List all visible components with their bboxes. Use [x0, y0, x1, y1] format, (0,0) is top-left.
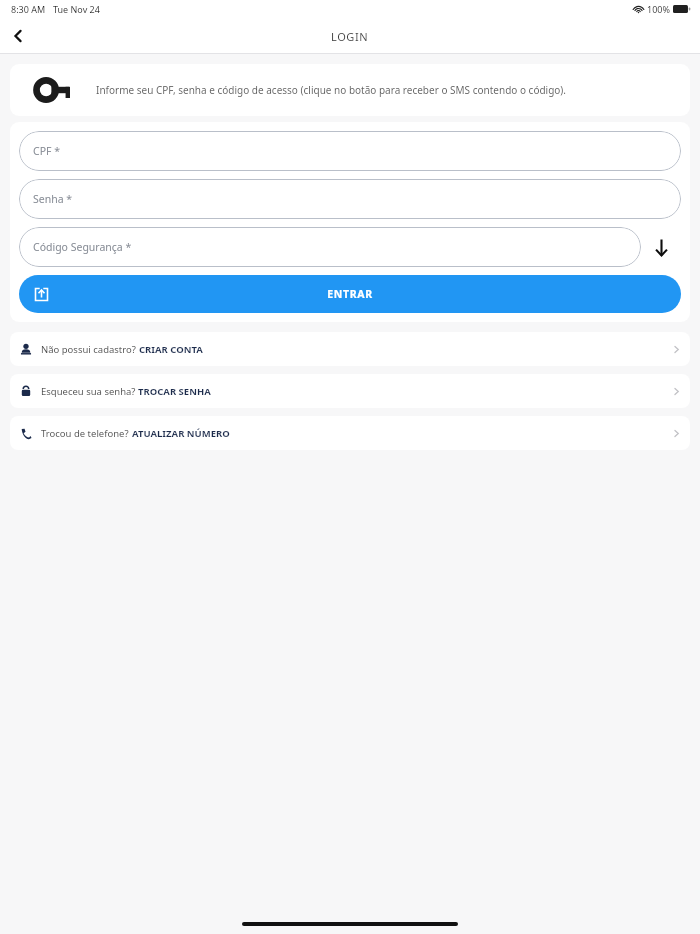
button[interactable]: Informe seu CPF, senha e código de acess… [10, 64, 690, 116]
staticText: Não possui cadastro? [41, 343, 139, 356]
staticText: Código Segurança * [33, 240, 132, 254]
staticText: Esqueceu sua senha? [41, 385, 138, 398]
button[interactable]: ENTRAR [19, 275, 681, 313]
staticText: Informe seu CPF, senha e código de acess… [96, 83, 567, 97]
staticText: ENTRAR [327, 287, 373, 301]
staticText: 8:30 AM [11, 3, 46, 15]
button[interactable]: Não possui cadastro? [10, 332, 690, 366]
button[interactable]: Receber código [641, 227, 681, 267]
staticText: CPF * [33, 144, 60, 158]
staticText: TROCAR SENHA [138, 385, 211, 398]
button[interactable]: Trocou de telefone? [10, 416, 690, 450]
button[interactable]: Código Segurança * [19, 227, 641, 267]
staticText: Senha * [33, 192, 73, 206]
staticText: Tue Nov 24 [53, 3, 100, 15]
button[interactable]: Esqueceu sua senha? [10, 374, 690, 408]
staticText: CRIAR CONTA [139, 343, 203, 356]
staticText: LOGIN [331, 29, 369, 44]
staticText: 100% [647, 3, 670, 15]
staticText: ATUALIZAR NÚMERO [132, 427, 230, 440]
button[interactable]: CPF * [19, 131, 681, 171]
button[interactable]: Back [0, 18, 36, 54]
staticText: Trocou de telefone? [41, 427, 132, 440]
button[interactable]: Senha * [19, 179, 681, 219]
